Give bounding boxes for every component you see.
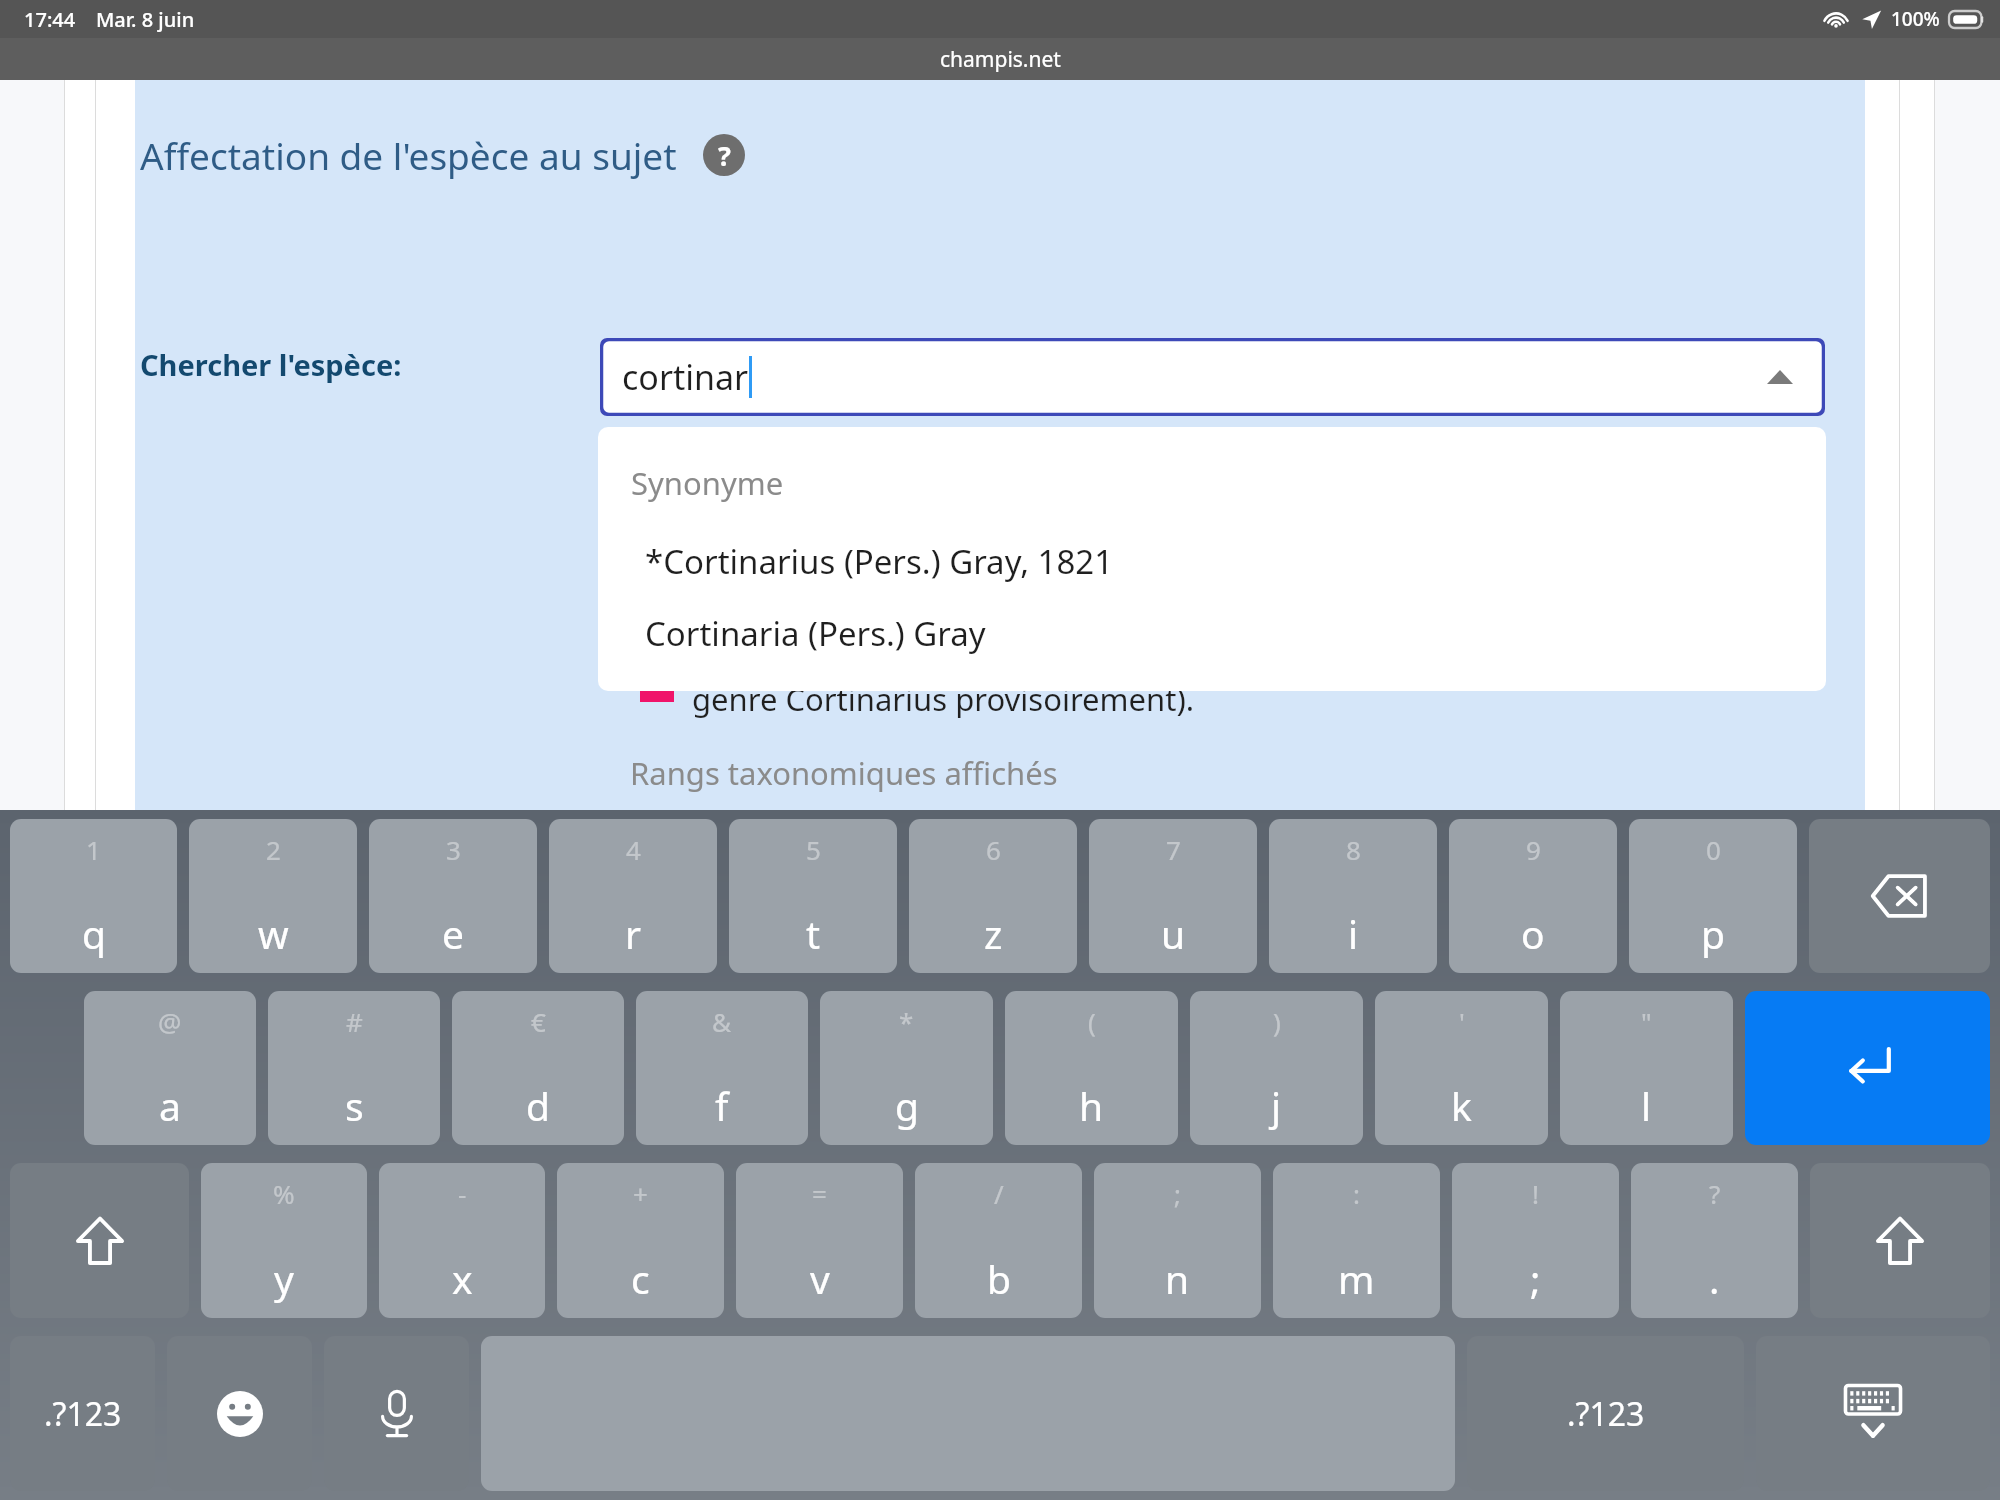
button[interactable]: 1	[10, 819, 177, 973]
staticText: ?	[1709, 1176, 1721, 1211]
button[interactable]: &	[636, 991, 808, 1145]
button[interactable]: Tous les rangs taxonomiques	[620, 810, 1120, 862]
button[interactable]: 3	[369, 819, 537, 973]
staticText: =	[812, 1176, 827, 1211]
staticText: h	[1079, 1079, 1104, 1132]
staticText: #	[346, 1004, 363, 1039]
button[interactable]: cortinar	[600, 338, 1825, 416]
button[interactable]: @	[84, 991, 256, 1145]
staticText: x	[452, 1252, 473, 1305]
button[interactable]: Dictée	[324, 1336, 469, 1491]
staticText: *	[899, 1004, 914, 1039]
staticText: p	[1701, 907, 1725, 960]
button[interactable]: €	[452, 991, 624, 1145]
staticText: i	[1348, 907, 1359, 960]
button[interactable]: -	[379, 1163, 545, 1318]
staticText: Synonyme	[631, 462, 784, 504]
staticText: y	[274, 1252, 294, 1305]
staticText: n	[1165, 1252, 1190, 1305]
button[interactable]: =	[736, 1163, 903, 1318]
button[interactable]: 2	[189, 819, 357, 973]
staticText: c	[631, 1252, 650, 1305]
staticText: cortinar	[622, 354, 749, 400]
staticText: &	[712, 1004, 732, 1039]
button[interactable]: Masquer le clavier	[1756, 1336, 1990, 1491]
staticText: (	[1088, 1004, 1096, 1039]
other: Localisation	[1861, 9, 1882, 30]
staticText: q	[82, 907, 106, 960]
button[interactable]: 0	[1629, 819, 1797, 973]
staticText: 5	[806, 832, 821, 867]
button[interactable]: .?123	[10, 1336, 155, 1491]
button[interactable]: Majuscule	[1810, 1163, 1990, 1318]
staticText: Rangs taxonomiques affichés	[630, 752, 1058, 794]
staticText: genre Cortinarius provisoirement).	[692, 678, 1195, 720]
button[interactable]: 5	[729, 819, 897, 973]
other: Wi-Fi	[1823, 9, 1849, 29]
button[interactable]: 8	[1269, 819, 1437, 973]
staticText: @	[158, 1004, 182, 1039]
button[interactable]: Émojis	[167, 1336, 312, 1491]
other: Batterie	[1948, 10, 1984, 29]
staticText: .?123	[1567, 1392, 1645, 1436]
staticText: 1	[86, 832, 101, 867]
button[interactable]: Aide	[703, 134, 745, 176]
staticText: t	[806, 907, 821, 960]
button[interactable]: Cortinaria (Pers.) Gray	[598, 597, 1826, 669]
button[interactable]: .?123	[1467, 1336, 1744, 1491]
staticText: o	[1521, 907, 1545, 960]
staticText: .	[1709, 1252, 1720, 1305]
staticText: /	[994, 1176, 1004, 1211]
staticText: a	[159, 1079, 181, 1132]
button[interactable]: (	[1005, 991, 1178, 1145]
staticText: k	[1451, 1079, 1472, 1132]
other: Fermer la liste	[1767, 370, 1793, 384]
staticText: f	[715, 1079, 729, 1132]
button[interactable]: 7	[1089, 819, 1257, 973]
staticText: j	[1271, 1079, 1282, 1132]
staticText: Chercher l'espèce:	[140, 345, 402, 384]
button[interactable]: )	[1190, 991, 1363, 1145]
button[interactable]: /	[915, 1163, 1082, 1318]
staticText: €	[531, 1004, 546, 1039]
staticText: 17:44	[24, 6, 76, 33]
staticText: Tous les rangs taxonomiques	[678, 814, 1116, 858]
button[interactable]: "	[1560, 991, 1733, 1145]
staticText: 0	[1706, 832, 1721, 867]
staticText: .?123	[44, 1392, 122, 1436]
button[interactable]: !	[1452, 1163, 1619, 1318]
staticText: %	[273, 1176, 295, 1211]
button[interactable]: 4	[549, 819, 717, 973]
button[interactable]: Supprimer	[1809, 819, 1990, 973]
staticText: ?	[718, 137, 731, 174]
button[interactable]: +	[557, 1163, 724, 1318]
button[interactable]: ;	[1094, 1163, 1261, 1318]
staticText: Affectation de l'espèce au sujet	[140, 130, 677, 180]
staticText: 3	[446, 832, 461, 867]
staticText: w	[258, 907, 289, 960]
staticText: u	[1161, 907, 1186, 960]
button[interactable]: #	[268, 991, 440, 1145]
button[interactable]: *	[820, 991, 993, 1145]
staticText: :	[1353, 1176, 1360, 1211]
button[interactable]: 6	[909, 819, 1077, 973]
button[interactable]: 9	[1449, 819, 1617, 973]
button[interactable]: Majuscule	[10, 1163, 189, 1318]
staticText: ;	[1174, 1176, 1181, 1211]
staticText: )	[1273, 1004, 1281, 1039]
staticText: l	[1641, 1079, 1652, 1132]
staticText: "	[1641, 1004, 1652, 1039]
button[interactable]: ?	[1631, 1163, 1798, 1318]
staticText: m	[1338, 1252, 1375, 1305]
staticText: Mar. 8 juin	[96, 6, 195, 33]
button[interactable]: '	[1375, 991, 1548, 1145]
staticText: s	[345, 1079, 364, 1132]
button[interactable]: :	[1273, 1163, 1440, 1318]
staticText: e	[442, 907, 464, 960]
staticText: 2	[266, 832, 281, 867]
button[interactable]: *Cortinarius (Pers.) Gray, 1821	[598, 525, 1826, 597]
button[interactable]: %	[201, 1163, 367, 1318]
staticText: 4	[626, 832, 641, 867]
button[interactable]: Entrée	[1745, 991, 1990, 1145]
